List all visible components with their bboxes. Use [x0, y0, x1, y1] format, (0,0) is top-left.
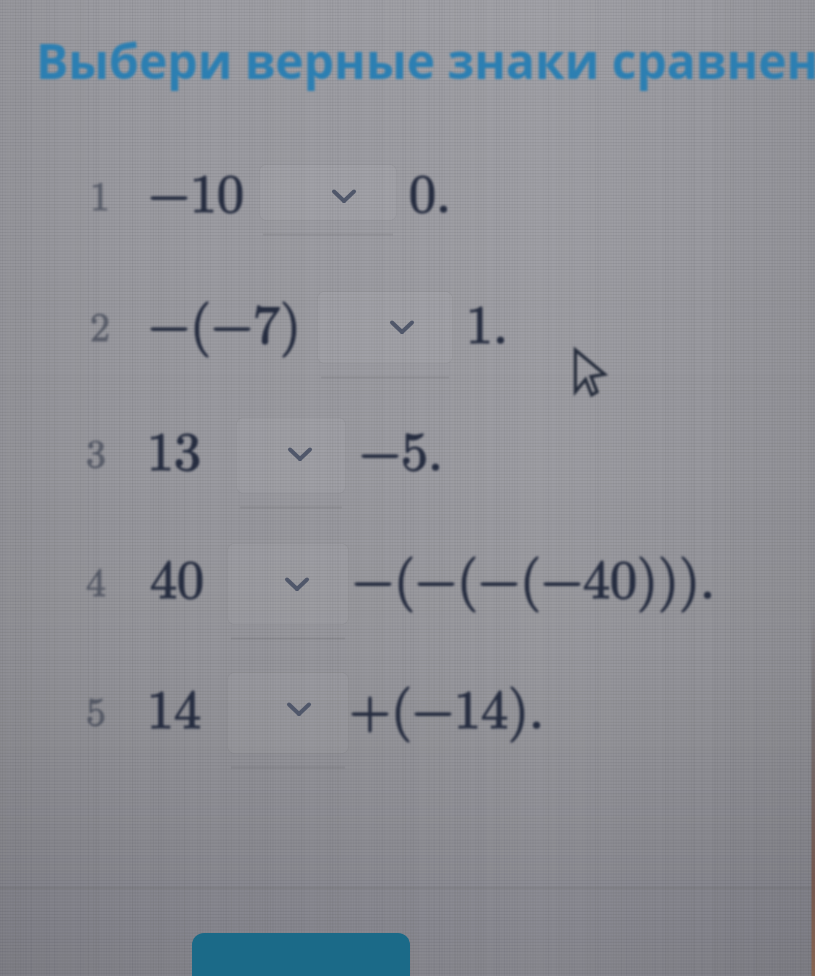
- staticText: 1.: [466, 282, 509, 359]
- staticText: +(−14).: [349, 667, 545, 744]
- button[interactable]: Проверить: [192, 933, 410, 976]
- staticText: 5: [86, 681, 106, 738]
- staticText: 13: [147, 409, 201, 486]
- staticText: −(−7): [148, 282, 302, 359]
- staticText: 40: [150, 537, 204, 614]
- staticText: −(−(−(−40))).: [352, 537, 716, 614]
- staticText: 0.: [409, 151, 452, 228]
- staticText: −10: [148, 151, 245, 228]
- button[interactable]: Выбрать знак сравнения: [236, 417, 346, 494]
- staticText: 13: [147, 409, 201, 486]
- staticText: +(−14).: [349, 667, 545, 744]
- staticText: 2: [90, 296, 110, 353]
- button[interactable]: Выбрать знак сравнения: [259, 164, 397, 221]
- staticText: 0.: [409, 151, 452, 228]
- button[interactable]: Выбрать знак сравнения: [227, 543, 349, 625]
- staticText: 14: [147, 667, 201, 744]
- staticText: 14: [147, 667, 201, 744]
- staticText: −(−7): [148, 282, 302, 359]
- staticText: 1: [90, 165, 110, 222]
- button[interactable]: Выбрать знак сравнения: [227, 672, 349, 754]
- staticText: 3: [86, 423, 106, 480]
- staticText: −5.: [359, 409, 444, 486]
- staticText: 2: [90, 296, 110, 353]
- staticText: −5.: [359, 409, 444, 486]
- button[interactable]: Выбрать знак сравнения: [317, 291, 453, 364]
- staticText: −10: [148, 151, 245, 228]
- staticText: 1: [90, 165, 110, 222]
- staticText: −(−(−(−40))).: [352, 537, 716, 614]
- staticText: Выбери верные знаки сравнени: [36, 28, 815, 93]
- staticText: 5: [86, 681, 106, 738]
- staticText: 40: [150, 537, 204, 614]
- staticText: 4: [86, 551, 106, 608]
- staticText: 3: [86, 423, 106, 480]
- staticText: 1.: [466, 282, 509, 359]
- staticText: 4: [86, 551, 106, 608]
